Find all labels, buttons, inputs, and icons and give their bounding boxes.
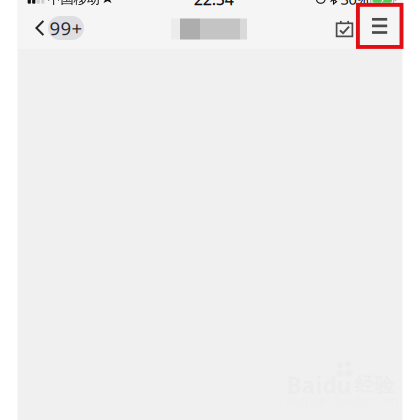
- staticText: 30%: [340, 0, 368, 9]
- staticText: 中国移动: [47, 0, 99, 7]
- button[interactable]: 99+: [35, 8, 84, 48]
- staticText: 99+: [49, 16, 82, 40]
- button[interactable]: Tasks: [327, 11, 361, 45]
- button[interactable]: Menu: [356, 3, 403, 49]
- staticText: 22:54: [194, 0, 234, 10]
